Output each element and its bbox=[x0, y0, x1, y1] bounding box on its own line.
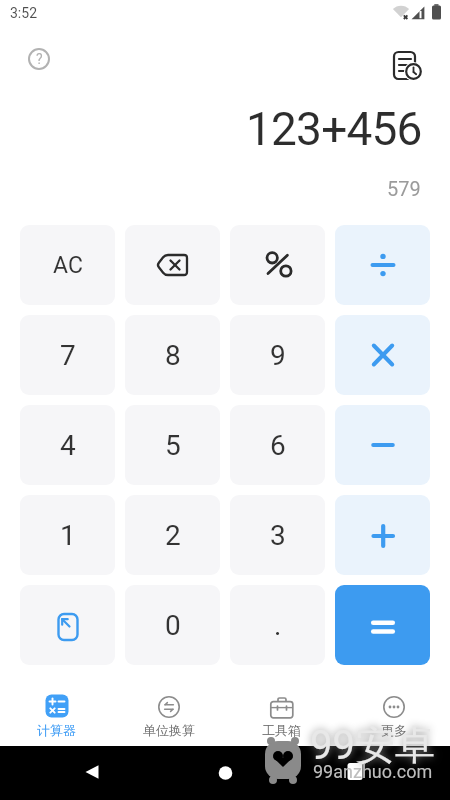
staticText: 4 bbox=[60, 429, 76, 462]
button[interactable] bbox=[392, 50, 424, 82]
staticText: 123+456 bbox=[246, 102, 422, 156]
staticText: 工具箱 bbox=[262, 722, 301, 738]
button[interactable] bbox=[20, 585, 115, 665]
staticText: AC bbox=[53, 252, 83, 279]
button[interactable] bbox=[335, 225, 430, 305]
staticText: 3:52 bbox=[10, 5, 37, 21]
button[interactable]: 7 bbox=[20, 315, 115, 395]
staticText: 1 bbox=[60, 519, 76, 552]
button[interactable]: 4 bbox=[20, 405, 115, 485]
staticText: ? bbox=[36, 51, 43, 67]
button[interactable]: 9 bbox=[230, 315, 325, 395]
button[interactable]: 单位换算 bbox=[119, 693, 219, 746]
button[interactable]: 计算器 bbox=[6, 693, 106, 746]
staticText: 5 bbox=[165, 429, 181, 462]
button[interactable]: 2 bbox=[125, 495, 220, 575]
staticText: 99安卓 bbox=[310, 720, 435, 770]
button[interactable]: 工具箱 bbox=[231, 693, 331, 746]
button[interactable]: AC bbox=[20, 225, 115, 305]
staticText: 7 bbox=[60, 339, 76, 372]
button[interactable] bbox=[335, 495, 430, 575]
button[interactable]: 1 bbox=[20, 495, 115, 575]
staticText: 8 bbox=[165, 339, 181, 372]
button[interactable]: 5 bbox=[125, 405, 220, 485]
button[interactable]: 6 bbox=[230, 405, 325, 485]
button[interactable]: 0 bbox=[125, 585, 220, 665]
button[interactable]: ? bbox=[28, 48, 50, 70]
button[interactable] bbox=[335, 315, 430, 395]
staticText: 3 bbox=[270, 519, 286, 552]
button[interactable]: 更多 bbox=[344, 693, 444, 746]
staticText: 更多 bbox=[381, 722, 407, 738]
button[interactable]: 3 bbox=[230, 495, 325, 575]
staticText: 0 bbox=[165, 609, 181, 642]
staticText: 单位换算 bbox=[143, 722, 195, 738]
staticText: . bbox=[274, 609, 282, 642]
button[interactable] bbox=[335, 585, 430, 665]
button[interactable]: 8 bbox=[125, 315, 220, 395]
button[interactable] bbox=[125, 225, 220, 305]
button[interactable] bbox=[335, 405, 430, 485]
staticText: 6 bbox=[270, 429, 286, 462]
staticText: 99anzhuo.com bbox=[313, 761, 433, 782]
staticText: 计算器 bbox=[37, 722, 76, 738]
staticText: 579 bbox=[387, 177, 421, 200]
button[interactable] bbox=[230, 225, 325, 305]
button[interactable]: . bbox=[230, 585, 325, 665]
staticText: 9 bbox=[270, 339, 286, 372]
staticText: 2 bbox=[165, 519, 181, 552]
